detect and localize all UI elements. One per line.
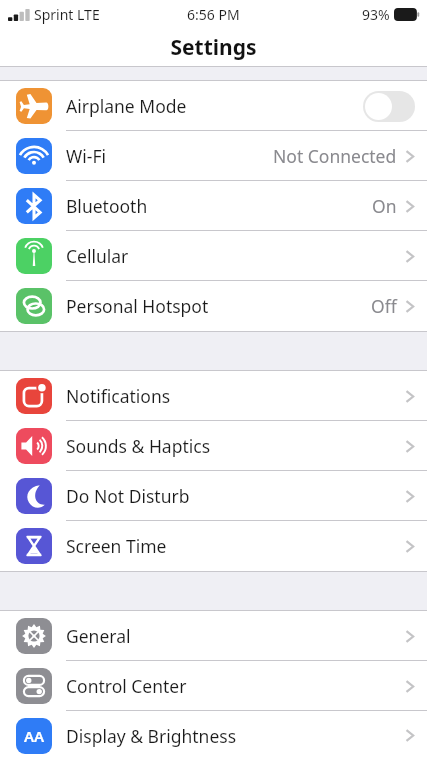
button[interactable]: General: [0, 611, 427, 661]
staticText: On: [372, 194, 397, 218]
staticText: Notifications: [66, 384, 171, 408]
staticText: Do Not Disturb: [66, 484, 190, 508]
staticText: Airplane Mode: [66, 94, 187, 118]
button[interactable]: Do Not Disturb: [0, 471, 427, 521]
staticText: Sprint LTE: [34, 5, 100, 24]
staticText: Settings: [170, 33, 257, 62]
staticText: Display & Brightness: [66, 724, 237, 748]
staticText: Bluetooth: [66, 194, 148, 218]
staticText: Control Center: [66, 674, 187, 698]
staticText: AA: [24, 726, 45, 746]
staticText: Screen Time: [66, 534, 167, 558]
button[interactable]: Screen Time: [0, 521, 427, 571]
button[interactable]: Notifications: [0, 371, 427, 421]
staticText: Cellular: [66, 244, 129, 268]
button[interactable]: Control Center: [0, 661, 427, 711]
staticText: 6:56 PM: [187, 5, 240, 24]
button[interactable]: Airplane Mode: [0, 81, 427, 131]
staticText: Sounds & Haptics: [66, 434, 211, 458]
staticText: 93%: [362, 5, 390, 24]
staticText: General: [66, 624, 131, 648]
button[interactable]: Personal Hotspot: [0, 281, 427, 331]
button[interactable]: Sounds & Haptics: [0, 421, 427, 471]
staticText: Off: [371, 294, 397, 318]
button[interactable]: AA: [0, 711, 427, 760]
button[interactable]: Wi-Fi: [0, 131, 427, 181]
staticText: Personal Hotspot: [66, 294, 209, 318]
button[interactable]: Cellular: [0, 231, 427, 281]
staticText: Not Connected: [273, 144, 397, 168]
staticText: Wi-Fi: [66, 144, 107, 168]
button[interactable]: Bluetooth: [0, 181, 427, 231]
button[interactable]: Airplane Mode toggle, off: [363, 91, 415, 122]
